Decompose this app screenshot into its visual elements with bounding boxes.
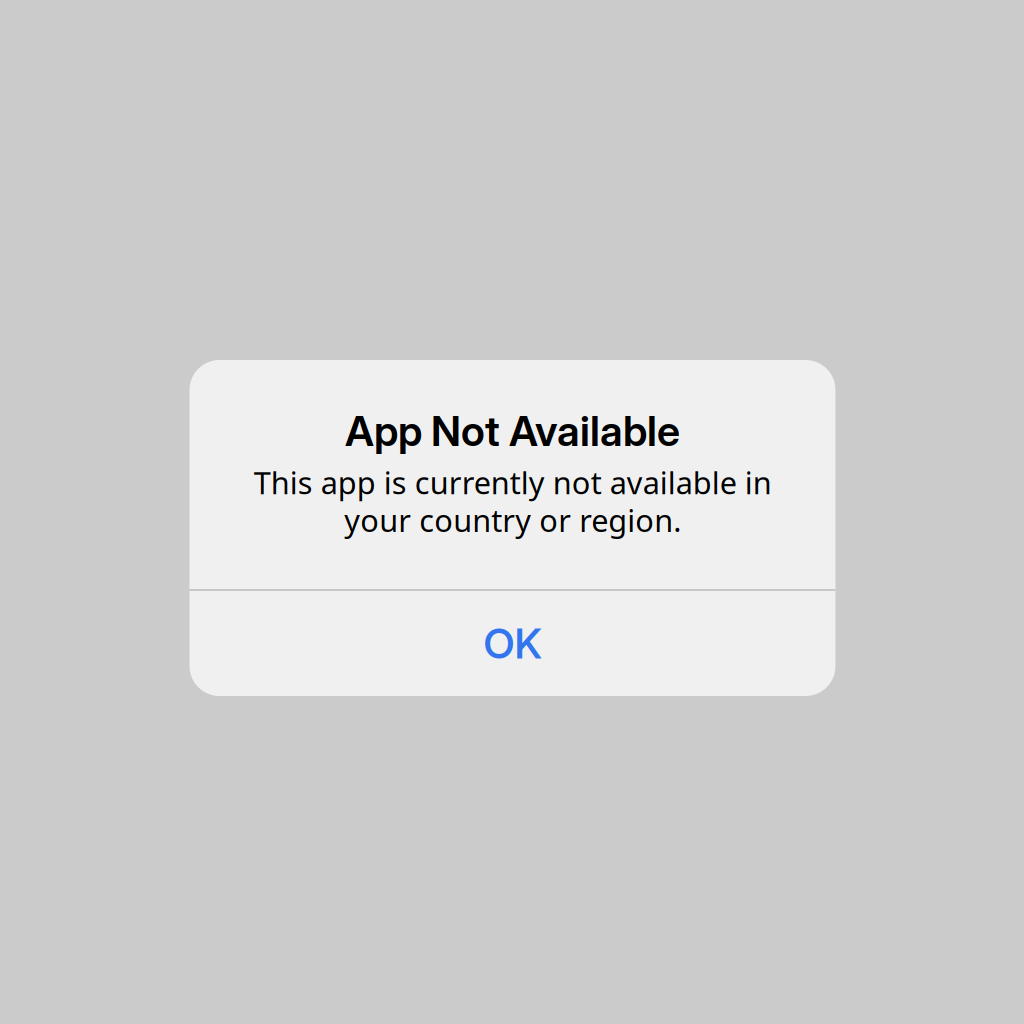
staticText: This app is currently not available in y… — [253, 462, 771, 540]
staticText: App Not Available — [345, 406, 680, 456]
button[interactable]: OK — [189, 591, 835, 696]
staticText: OK — [483, 618, 541, 668]
